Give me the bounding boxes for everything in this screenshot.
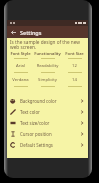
staticText: Background color (20, 98, 57, 104)
staticText: Text color (20, 109, 40, 115)
staticText: 14 (61, 77, 88, 83)
staticText: Is the sample design of the new web scre… (10, 39, 87, 49)
staticText: Cursor position (20, 131, 52, 137)
button[interactable]: Cursor position (7, 128, 88, 139)
button[interactable]: Background color (7, 95, 88, 106)
staticText: Font Size (61, 51, 88, 57)
staticText: Settings (20, 29, 42, 36)
staticText: Verdana (7, 77, 34, 83)
staticText: Arial (7, 63, 34, 69)
button[interactable]: Default Settings (7, 139, 88, 150)
staticText: 12 (61, 63, 88, 69)
staticText: Functionality (34, 51, 61, 57)
button[interactable]: Back (7, 26, 20, 38)
staticText: Font Style (7, 51, 34, 57)
staticText: Readability (34, 63, 61, 69)
staticText: Simplicity (34, 77, 61, 83)
staticText: Text size/color (20, 120, 50, 126)
staticText: Default Settings (20, 142, 53, 148)
button[interactable]: Text color (7, 106, 88, 117)
button[interactable]: Text size/color (7, 117, 88, 128)
